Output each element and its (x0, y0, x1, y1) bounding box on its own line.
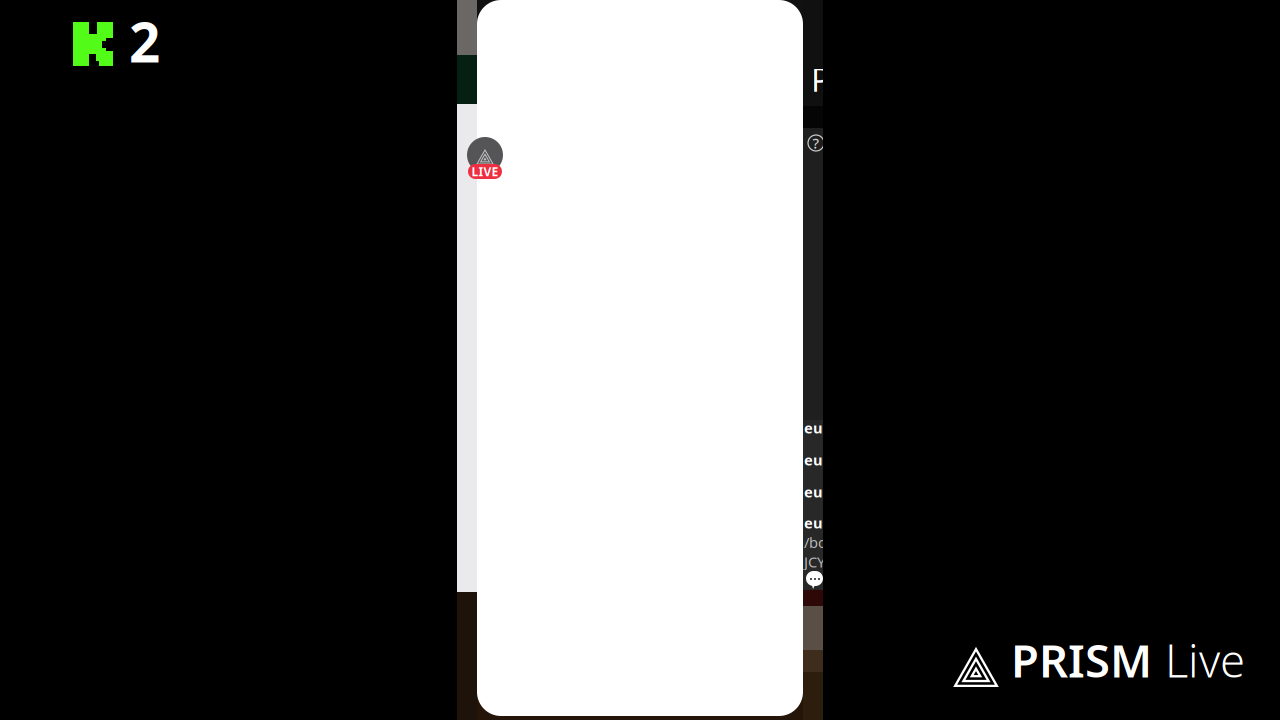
button[interactable]: Help (808, 135, 824, 151)
staticText: ? (812, 133, 819, 153)
button[interactable]: Chat (806, 571, 823, 590)
staticText: 2 (129, 5, 160, 78)
staticText: P (811, 58, 830, 100)
staticText: eue (804, 450, 832, 469)
staticText: /bot (804, 532, 832, 552)
staticText: PRISM (1011, 630, 1152, 690)
staticText: eue (804, 482, 832, 501)
button[interactable]: 2 (73, 22, 160, 95)
staticText: eue (804, 513, 832, 532)
staticText: eue (804, 418, 832, 437)
staticText: LIVE (471, 163, 498, 179)
staticText: JCY6 (804, 552, 833, 571)
staticText: Live (1165, 630, 1245, 690)
